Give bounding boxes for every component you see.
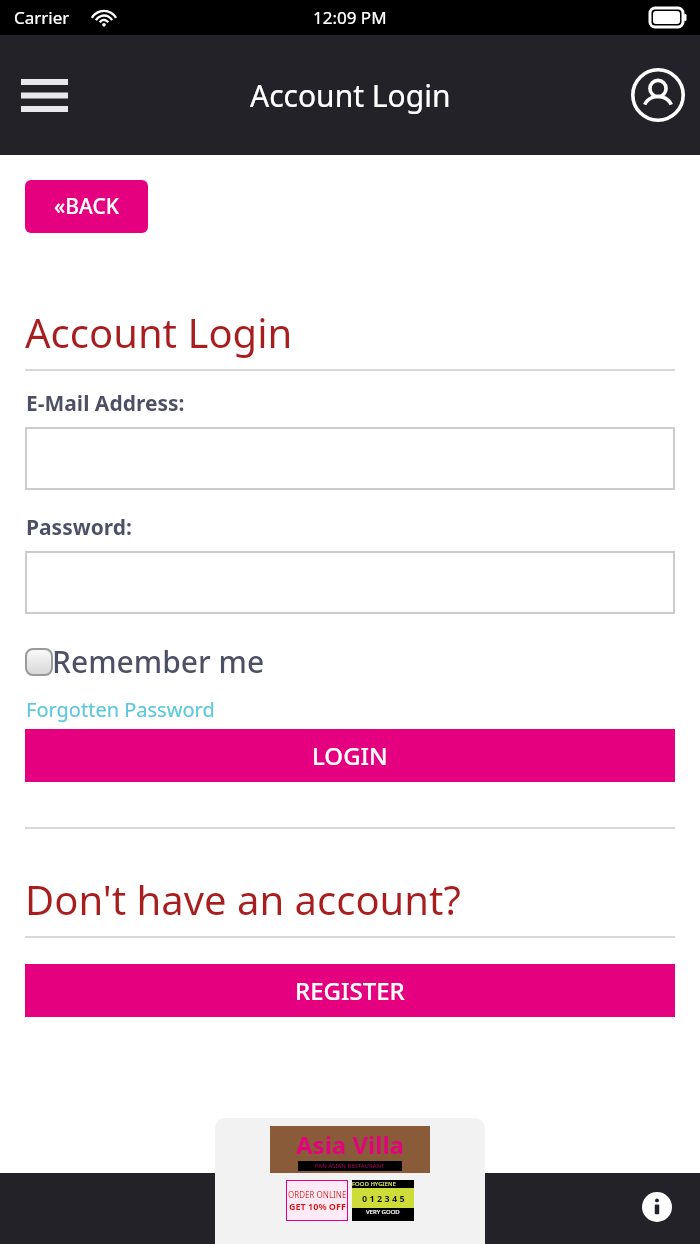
- staticText: Account Login: [25, 305, 293, 359]
- staticText: FOOD HYGIENE RATING: [352, 1180, 414, 1188]
- button[interactable]: Forgotten Password: [26, 696, 215, 723]
- button[interactable]: Remember me: [26, 641, 265, 682]
- button[interactable]: REGISTER: [25, 964, 675, 1017]
- staticText: Asia Villa: [296, 1128, 404, 1161]
- staticText: Don't have an account?: [25, 872, 461, 926]
- staticText: 0 1 2 3 4 5: [362, 1192, 405, 1204]
- staticText: Remember me: [52, 641, 265, 682]
- button[interactable]: Ad information: [640, 1190, 674, 1224]
- staticText: 12:09 PM: [313, 6, 387, 29]
- button[interactable]: [25, 551, 675, 614]
- staticText: ORDER ONLINE: [288, 1189, 347, 1200]
- staticText: «BACK: [54, 192, 120, 221]
- staticText: PAN ASIAN RESTAURANT: [315, 1162, 385, 1170]
- staticText: Account Login: [250, 75, 451, 116]
- button[interactable]: Asia Villa: [215, 1118, 485, 1244]
- staticText: REGISTER: [295, 974, 405, 1007]
- button[interactable]: LOGIN: [25, 729, 675, 782]
- button[interactable]: [25, 427, 675, 490]
- button[interactable]: Menu: [12, 67, 76, 123]
- staticText: LOGIN: [312, 739, 388, 772]
- staticText: E-Mail Address:: [26, 389, 185, 418]
- staticText: VERY GOOD: [366, 1208, 400, 1216]
- staticText: Carrier: [14, 6, 70, 29]
- button[interactable]: «BACK: [25, 180, 148, 233]
- staticText: GET 10% OFF: [289, 1200, 346, 1212]
- staticText: Password:: [26, 513, 132, 542]
- button[interactable]: Account: [626, 63, 690, 127]
